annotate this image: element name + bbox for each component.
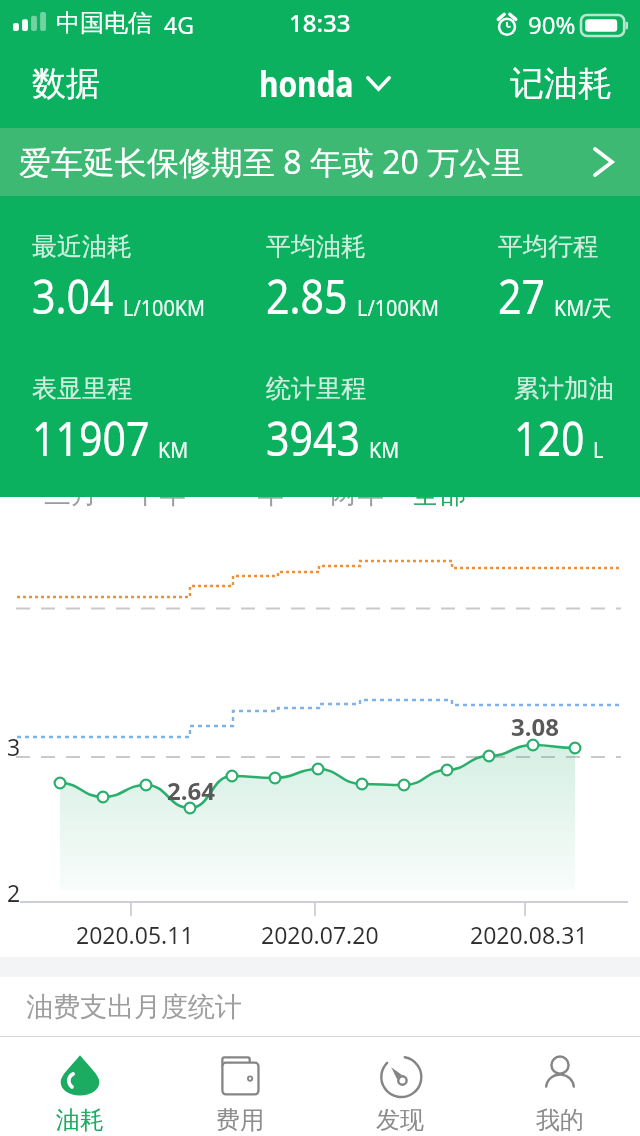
staticText: 一年 bbox=[230, 477, 284, 511]
button[interactable]: 油耗 bbox=[0, 1037, 160, 1136]
staticText: 3.04 bbox=[32, 263, 114, 328]
staticText: 11907 bbox=[32, 405, 150, 470]
staticText: 4G bbox=[164, 9, 194, 40]
staticText: 油耗 bbox=[56, 1105, 104, 1135]
button[interactable]: 记油耗 bbox=[482, 48, 640, 119]
other: 查看详情 bbox=[593, 147, 614, 177]
button[interactable]: 数据 bbox=[0, 48, 132, 119]
staticText: KM bbox=[158, 434, 189, 464]
staticText: 3.08 bbox=[511, 710, 559, 743]
button[interactable]: honda bbox=[249, 51, 401, 116]
staticText: 27 bbox=[498, 263, 545, 328]
staticText: 累计加油 bbox=[514, 373, 614, 404]
staticText: 记油耗 bbox=[510, 62, 612, 105]
staticText: 3 bbox=[7, 731, 21, 762]
staticText: 18:33 bbox=[289, 6, 351, 39]
staticText: 2020.07.20 bbox=[261, 919, 379, 950]
staticText: 3943 bbox=[266, 405, 360, 470]
staticText: 2.85 bbox=[266, 263, 348, 328]
staticText: 油费支出月度统计 bbox=[26, 990, 242, 1024]
staticText: 全部 bbox=[412, 477, 466, 511]
button[interactable]: 全部 bbox=[398, 472, 480, 516]
staticText: L/100KM bbox=[123, 292, 206, 322]
staticText: 我的 bbox=[536, 1105, 584, 1135]
button[interactable]: 半年 bbox=[118, 472, 200, 516]
button[interactable]: 三月 bbox=[30, 472, 112, 516]
staticText: 2020.08.31 bbox=[470, 919, 588, 950]
staticText: honda bbox=[259, 59, 354, 108]
staticText: 统计里程 bbox=[266, 373, 366, 404]
staticText: 半年 bbox=[132, 477, 186, 511]
staticText: 最近油耗 bbox=[32, 231, 132, 262]
staticText: 90% bbox=[528, 8, 576, 41]
staticText: KM/天 bbox=[554, 292, 612, 322]
staticText: 两年 bbox=[330, 477, 384, 511]
staticText: 2 bbox=[7, 877, 21, 908]
staticText: 发现 bbox=[376, 1105, 424, 1135]
button[interactable]: 一年 bbox=[216, 472, 298, 516]
staticText: 2.64 bbox=[167, 774, 215, 807]
button[interactable]: 我的 bbox=[480, 1037, 640, 1136]
staticText: 平均油耗 bbox=[266, 231, 366, 262]
staticText: 120 bbox=[514, 405, 585, 470]
staticText: 三月 bbox=[44, 477, 98, 511]
button[interactable]: 费用 bbox=[160, 1037, 320, 1136]
button[interactable]: 发现 bbox=[320, 1037, 480, 1136]
staticText: L bbox=[593, 434, 604, 464]
staticText: KM bbox=[369, 434, 400, 464]
staticText: 中国电信 bbox=[56, 8, 152, 38]
staticText: 表显里程 bbox=[32, 373, 132, 404]
staticText: 数据 bbox=[32, 62, 100, 105]
staticText: 2020.05.11 bbox=[76, 919, 194, 950]
button[interactable]: 爱车延长保修期至 8 年或 20 万公里 bbox=[0, 128, 640, 196]
staticText: 爱车延长保修期至 8 年或 20 万公里 bbox=[19, 140, 524, 184]
staticText: 平均行程 bbox=[498, 231, 598, 262]
staticText: 费用 bbox=[216, 1105, 264, 1135]
button[interactable]: 两年 bbox=[316, 472, 398, 516]
staticText: L/100KM bbox=[357, 292, 440, 322]
